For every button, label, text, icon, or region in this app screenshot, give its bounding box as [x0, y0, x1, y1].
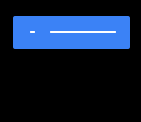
button[interactable]: Action	[13, 16, 130, 49]
